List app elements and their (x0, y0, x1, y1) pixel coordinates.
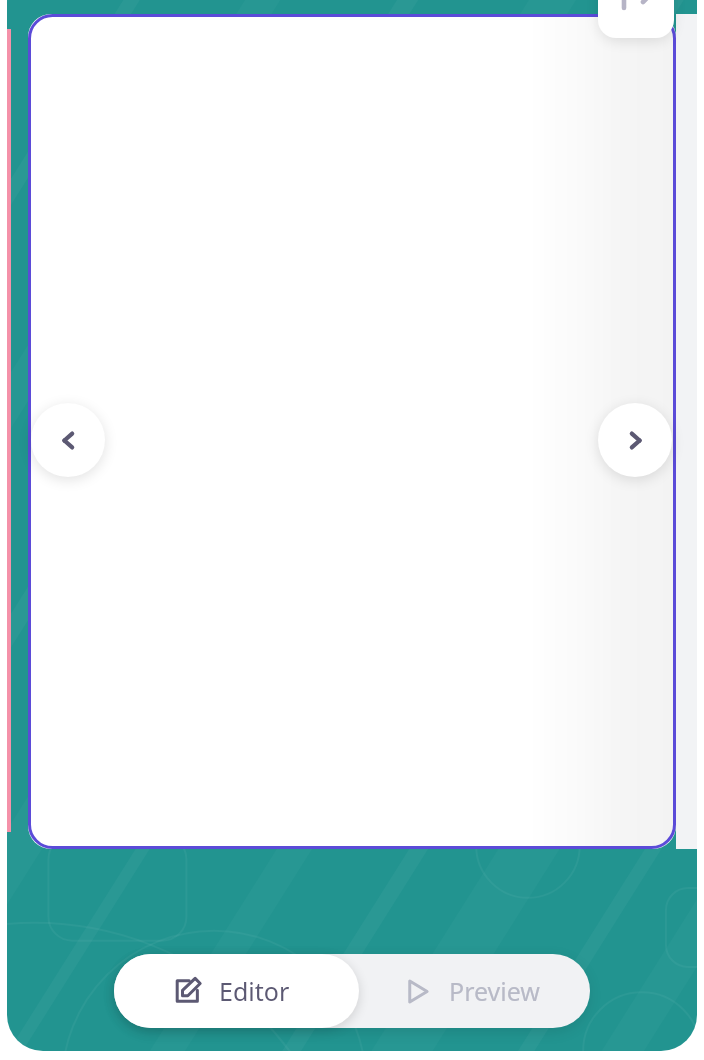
button[interactable]: Editor (114, 954, 359, 1028)
button[interactable]: Expand preview (598, 0, 674, 38)
staticText: Preview (449, 974, 540, 1008)
button[interactable]: Preview (359, 954, 590, 1028)
button[interactable]: Previous page (31, 403, 105, 477)
button[interactable]: Next page (598, 403, 672, 477)
staticText: Editor (219, 974, 290, 1008)
